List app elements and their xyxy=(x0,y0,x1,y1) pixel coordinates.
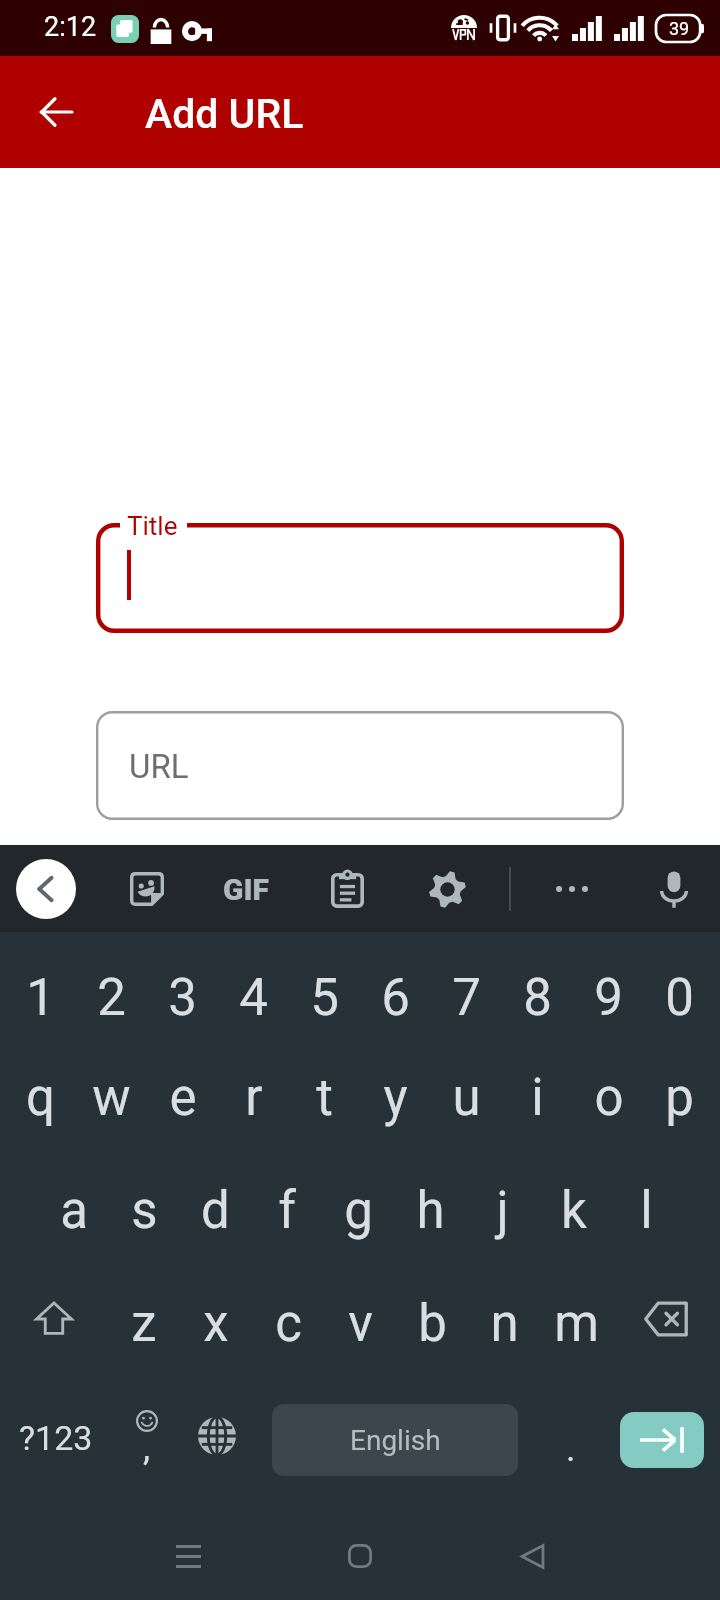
button[interactable]: z xyxy=(108,1262,180,1375)
button[interactable]: a xyxy=(38,1149,109,1262)
button[interactable]: f xyxy=(251,1149,322,1262)
staticText: t xyxy=(316,1068,333,1128)
button[interactable]: q xyxy=(5,1037,76,1149)
button[interactable]: h xyxy=(394,1149,466,1262)
button[interactable]: Settings xyxy=(417,859,477,919)
button[interactable]: j xyxy=(466,1149,538,1262)
button[interactable]: c xyxy=(252,1262,324,1375)
button[interactable]: p xyxy=(644,1037,715,1149)
staticText: a xyxy=(60,1181,88,1241)
button[interactable]: 2 xyxy=(76,932,147,1037)
button[interactable]: m xyxy=(540,1262,612,1375)
staticText: 39 xyxy=(669,18,690,39)
button[interactable]: Title xyxy=(96,523,624,633)
staticText: , xyxy=(143,1427,151,1469)
button[interactable]: 7 xyxy=(431,932,502,1037)
staticText: Add URL xyxy=(145,90,304,138)
staticText: 7 xyxy=(452,968,481,1028)
staticText: GIF xyxy=(223,872,269,907)
staticText: s xyxy=(131,1181,158,1241)
button[interactable]: Voice input xyxy=(644,859,704,919)
button[interactable]: 3 xyxy=(147,932,218,1037)
button[interactable]: d xyxy=(180,1149,251,1262)
button[interactable]: English xyxy=(272,1404,518,1476)
button[interactable]: w xyxy=(76,1037,147,1149)
button[interactable]: e xyxy=(147,1037,218,1149)
button[interactable]: Stickers xyxy=(117,859,177,919)
button[interactable]: y xyxy=(360,1037,431,1149)
staticText: x xyxy=(203,1294,229,1354)
button[interactable]: s xyxy=(109,1149,180,1262)
staticText: p xyxy=(665,1068,694,1128)
staticText: i xyxy=(531,1068,544,1128)
button[interactable]: URL xyxy=(96,711,624,820)
staticText: j xyxy=(496,1181,509,1241)
staticText: h xyxy=(416,1181,445,1241)
staticText: 0 xyxy=(665,968,694,1028)
button[interactable]: 8 xyxy=(502,932,573,1037)
button[interactable]: i xyxy=(502,1037,573,1149)
staticText: 3 xyxy=(168,968,197,1028)
button[interactable]: ?123 xyxy=(0,1375,112,1500)
staticText: z xyxy=(131,1294,157,1354)
button[interactable]: k xyxy=(538,1149,610,1262)
button[interactable]: x xyxy=(180,1262,252,1375)
staticText: URL xyxy=(129,747,189,786)
button[interactable]: o xyxy=(573,1037,644,1149)
staticText: g xyxy=(344,1181,373,1241)
button[interactable]: Backspace xyxy=(612,1262,720,1375)
staticText: b xyxy=(418,1294,447,1354)
button[interactable]: Enter xyxy=(620,1412,704,1468)
staticText: 6 xyxy=(381,968,410,1028)
staticText: u xyxy=(452,1068,481,1128)
staticText: e xyxy=(169,1068,197,1128)
staticText: c xyxy=(275,1294,302,1354)
button[interactable]: u xyxy=(431,1037,502,1149)
button[interactable]: Back xyxy=(20,76,92,148)
button[interactable]: Collapse keyboard xyxy=(16,859,76,919)
button[interactable]: v xyxy=(324,1262,396,1375)
button[interactable]: Shift xyxy=(0,1262,108,1375)
staticText: k xyxy=(561,1181,587,1241)
button[interactable]: 6 xyxy=(360,932,431,1037)
staticText: q xyxy=(26,1068,55,1128)
button[interactable]: GIF xyxy=(206,849,286,929)
staticText: 4 xyxy=(239,968,268,1028)
staticText: 8 xyxy=(523,968,552,1028)
staticText: f xyxy=(278,1181,296,1241)
button[interactable]: Recent apps xyxy=(148,1516,228,1596)
staticText: w xyxy=(92,1068,131,1128)
staticText: l xyxy=(640,1181,653,1241)
staticText: v xyxy=(348,1294,373,1354)
button[interactable]: Home xyxy=(320,1516,400,1596)
button[interactable]: 9 xyxy=(573,932,644,1037)
button[interactable]: b xyxy=(396,1262,468,1375)
button[interactable]: 0 xyxy=(644,932,715,1037)
button[interactable]: t xyxy=(289,1037,360,1149)
staticText: Title xyxy=(127,511,178,541)
staticText: n xyxy=(490,1294,519,1354)
button[interactable]: g xyxy=(322,1149,394,1262)
button[interactable]: 1 xyxy=(5,932,76,1037)
staticText: 1 xyxy=(26,968,55,1028)
staticText: d xyxy=(201,1181,230,1241)
staticText: r xyxy=(245,1068,263,1128)
button[interactable]: n xyxy=(468,1262,540,1375)
button[interactable]: 5 xyxy=(289,932,360,1037)
staticText: 9 xyxy=(594,968,623,1028)
staticText: . xyxy=(566,1428,576,1470)
button[interactable]: 4 xyxy=(218,932,289,1037)
button[interactable]: Change language xyxy=(180,1375,256,1500)
staticText: y xyxy=(383,1068,408,1128)
staticText: m xyxy=(554,1294,599,1354)
button[interactable]: Back xyxy=(492,1516,572,1596)
button[interactable]: Clipboard xyxy=(317,859,377,919)
button[interactable]: l xyxy=(610,1149,682,1262)
button[interactable]: Emoji xyxy=(112,1375,180,1500)
button[interactable]: . xyxy=(531,1375,611,1500)
staticText: 5 xyxy=(310,968,339,1028)
staticText: 2:12 xyxy=(44,11,97,43)
staticText: English xyxy=(350,1424,441,1457)
button[interactable]: r xyxy=(218,1037,289,1149)
button[interactable]: More options xyxy=(542,859,602,919)
